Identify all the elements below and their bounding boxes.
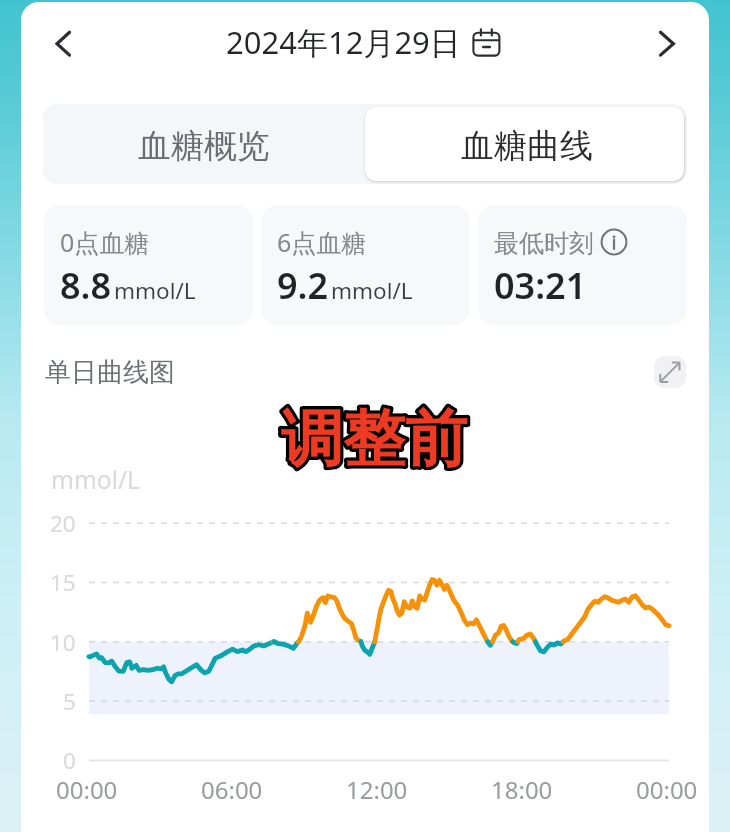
button[interactable]: 血糖曲线 <box>365 107 684 181</box>
staticText: 血糖曲线 <box>461 125 593 167</box>
button[interactable]: Expand chart <box>654 356 686 388</box>
staticText: 15 <box>50 567 76 598</box>
staticText: 2024年12月29日 <box>226 21 461 63</box>
staticText: 0点血糖 <box>60 225 150 259</box>
staticText: 5 <box>63 686 76 717</box>
button[interactable]: 0点血糖 <box>44 205 253 325</box>
staticText: 18:00 <box>491 773 553 806</box>
staticText: 00:00 <box>636 773 698 806</box>
staticText: 最低时刻 <box>494 228 594 259</box>
staticText: mmol/L <box>114 275 196 306</box>
staticText: mmol/L <box>51 463 140 496</box>
button[interactable]: Next day <box>639 16 695 72</box>
staticText: mmol/L <box>331 275 413 306</box>
staticText: 6点血糖 <box>277 225 367 259</box>
staticText: 00:00 <box>56 773 118 806</box>
button[interactable]: Pick date <box>469 25 505 61</box>
staticText: 9.2 <box>277 261 329 310</box>
staticText: 20 <box>50 508 76 539</box>
staticText: 0 <box>63 745 76 776</box>
staticText: 8.8 <box>60 261 112 310</box>
staticText: 调整前 <box>281 400 467 478</box>
button[interactable]: 血糖概览 <box>46 107 365 181</box>
button[interactable]: Previous day <box>35 16 91 72</box>
staticText: 10 <box>50 627 76 658</box>
staticText: 调整前 <box>281 400 467 478</box>
staticText: 06:00 <box>201 773 263 806</box>
button[interactable]: 最低时刻 <box>478 205 687 325</box>
staticText: 03:21 <box>494 261 587 310</box>
button[interactable]: 6点血糖 <box>261 205 470 325</box>
staticText: 单日曲线图 <box>45 356 175 389</box>
staticText: 血糖概览 <box>138 125 270 167</box>
staticText: 12:00 <box>346 773 408 806</box>
